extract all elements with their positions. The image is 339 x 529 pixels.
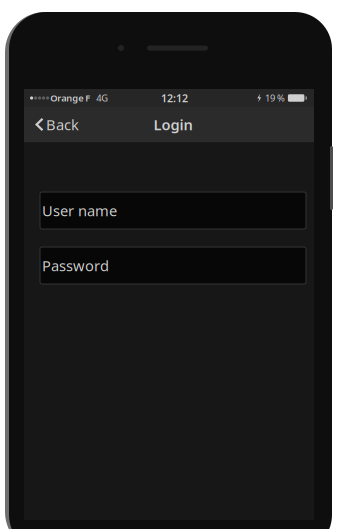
staticText: 12:12	[161, 91, 188, 105]
staticText: User name	[42, 201, 117, 220]
staticText: Login	[153, 115, 192, 134]
staticText: Password	[42, 256, 109, 275]
button[interactable]: Password	[40, 247, 306, 284]
staticText: Orange F	[50, 92, 90, 104]
staticText: 4G	[96, 92, 108, 104]
staticText: 19 %	[265, 92, 285, 104]
button[interactable]: Back	[24, 107, 104, 142]
staticText: Back	[46, 115, 79, 134]
button[interactable]: User name	[40, 192, 306, 229]
